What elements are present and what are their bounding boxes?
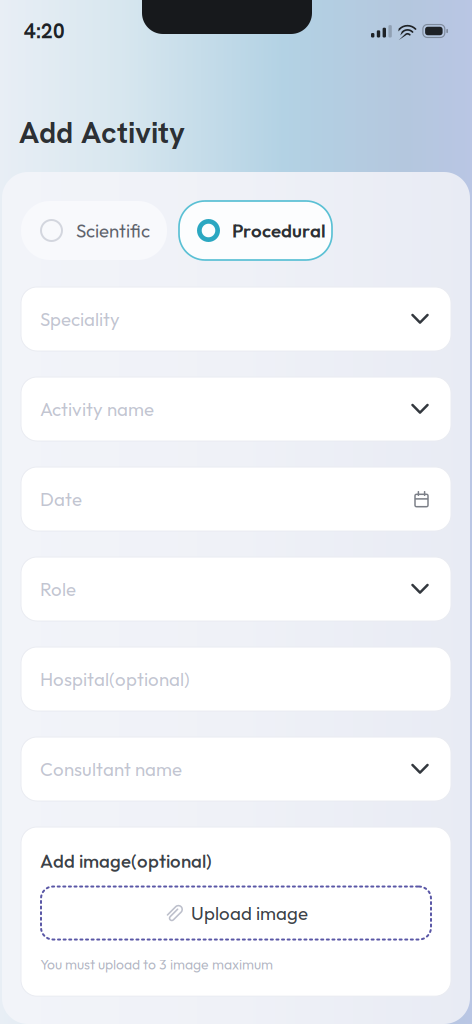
button[interactable]: Consultant name (21, 737, 451, 801)
staticText: Role (40, 577, 76, 601)
staticText: Add image(optional) (40, 849, 212, 872)
staticText: 4:20 (24, 17, 65, 44)
staticText: Consultant name (40, 757, 182, 781)
staticText: You must upload to 3 image maximum (40, 955, 273, 973)
staticText: Scientific (76, 219, 150, 242)
button[interactable]: Date (21, 467, 451, 531)
button[interactable]: Activity name (21, 377, 451, 441)
staticText: Upload image (191, 901, 308, 925)
staticText: Activity name (40, 397, 154, 421)
button[interactable]: Upload image (40, 885, 432, 940)
staticText: Add Activity (19, 113, 185, 152)
button[interactable]: Hospital(optional) (21, 647, 451, 711)
staticText: Hospital(optional) (40, 667, 190, 691)
staticText: Date (40, 487, 82, 511)
staticText: Procedural (232, 219, 326, 242)
button[interactable]: Role (21, 557, 451, 621)
staticText: Speciality (40, 307, 120, 331)
button[interactable]: Scientific (21, 201, 167, 260)
button[interactable]: Procedural (179, 201, 332, 260)
button[interactable]: Speciality (21, 287, 451, 351)
